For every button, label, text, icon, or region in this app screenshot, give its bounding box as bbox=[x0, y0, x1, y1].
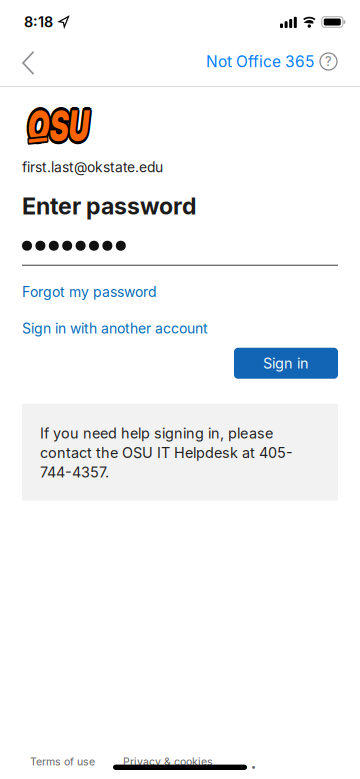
staticText: OSU bbox=[29, 107, 90, 141]
staticText: Enter password bbox=[22, 192, 196, 220]
staticText: first.last@okstate.edu bbox=[22, 159, 163, 175]
staticText: • • • bbox=[235, 761, 256, 772]
staticText: 8:18 bbox=[24, 13, 53, 30]
staticText: Terms of use bbox=[30, 756, 95, 768]
button[interactable]: Not Office 365 bbox=[206, 54, 314, 72]
staticText: OSU bbox=[27, 106, 88, 141]
button[interactable]: Terms of use bbox=[30, 756, 95, 768]
staticText: If you need help signing in, please cont… bbox=[40, 425, 293, 481]
button[interactable]: More options bbox=[213, 756, 256, 767]
button[interactable]: Privacy & cookies bbox=[95, 756, 213, 768]
staticText: OSU bbox=[25, 108, 86, 143]
button[interactable]: Sign in bbox=[234, 348, 338, 379]
staticText: Not Office 365 bbox=[206, 52, 314, 71]
staticText: ? bbox=[325, 54, 332, 69]
staticText: OSU bbox=[29, 110, 90, 144]
button[interactable]: Help bbox=[314, 53, 360, 72]
staticText: OSU bbox=[30, 108, 91, 143]
staticText: Sign in with another account bbox=[22, 320, 208, 337]
staticText: OSU bbox=[27, 110, 88, 145]
staticText: OSU bbox=[26, 110, 87, 144]
staticText: Sign in bbox=[263, 355, 309, 372]
staticText: Forgot my password bbox=[22, 284, 157, 300]
staticText: OSU bbox=[26, 107, 87, 141]
staticText: Privacy & cookies bbox=[123, 756, 213, 768]
button[interactable]: Back bbox=[0, 51, 44, 75]
button[interactable]: Forgot my password bbox=[22, 284, 157, 300]
staticText: OSU bbox=[27, 108, 88, 143]
button[interactable]: Sign in with another account bbox=[22, 320, 208, 337]
